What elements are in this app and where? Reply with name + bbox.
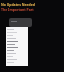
staticText: No Updates Needed <box>1 2 35 7</box>
staticText: The Important Part <box>1 7 34 12</box>
button[interactable] <box>9 18 32 27</box>
